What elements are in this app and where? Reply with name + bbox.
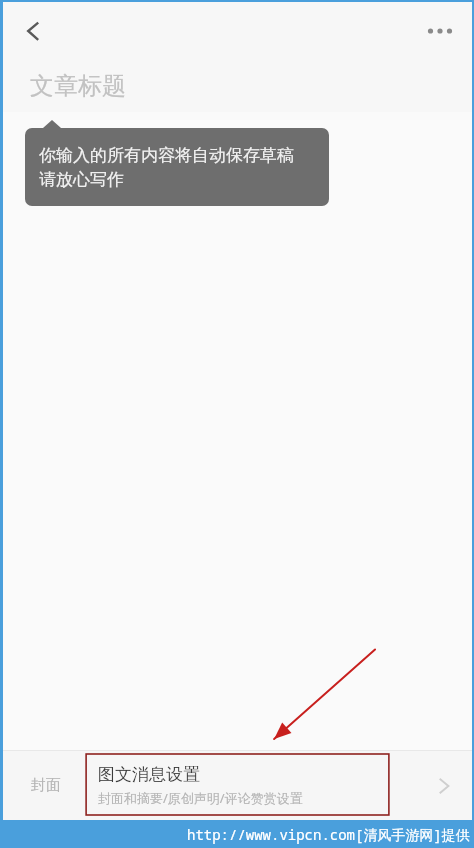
staticText: 文章标题 [30,71,126,101]
button[interactable]: Back [9,7,57,55]
staticText: 请放心写作 [39,169,124,190]
button[interactable]: 文章标题 [3,60,472,112]
staticText: 图文消息设置 [98,764,200,785]
staticText: 你输入的所有内容将自动保存草稿 [39,145,294,166]
staticText: http://www.vipcn.com[清风手游网]提供 [187,825,470,844]
button[interactable]: 图文消息设置 [88,751,472,820]
button[interactable]: More options [416,7,464,55]
button[interactable]: 封面 [3,751,88,820]
staticText: 封面和摘要/原创声明/评论赞赏设置 [98,789,303,807]
staticText: 封面 [31,776,61,795]
button[interactable]: 你输入的所有内容将自动保存草稿 [25,128,329,206]
